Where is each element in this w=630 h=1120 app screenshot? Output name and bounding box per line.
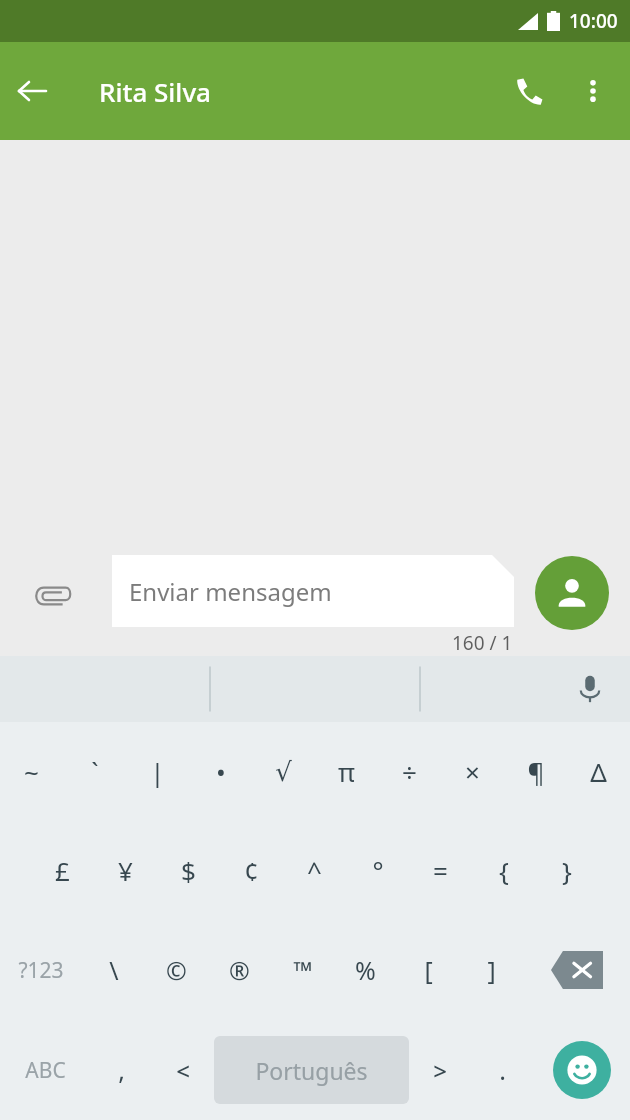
button[interactable]: Emoji xyxy=(553,1041,611,1099)
button[interactable]: < xyxy=(152,1020,214,1120)
button[interactable]: ¢ xyxy=(220,821,283,920)
button[interactable]: • xyxy=(189,722,252,821)
staticText: © xyxy=(166,953,187,987)
button[interactable]: $ xyxy=(157,821,220,920)
staticText: > xyxy=(433,1054,447,1087)
button[interactable]: © xyxy=(145,920,208,1020)
button[interactable]: ^ xyxy=(283,821,346,920)
button[interactable]: £ xyxy=(31,821,94,920)
button[interactable]: Português xyxy=(214,1036,409,1104)
button[interactable]: Attach xyxy=(22,570,82,622)
staticText: Português xyxy=(255,1055,368,1086)
button[interactable]: ?123 xyxy=(0,920,82,1020)
button[interactable]: | xyxy=(126,722,189,821)
button[interactable]: ™ xyxy=(271,920,334,1020)
button[interactable]: = xyxy=(409,821,472,920)
staticText: ÷ xyxy=(402,754,417,789)
staticText: \ xyxy=(109,953,119,987)
staticText: ¶ xyxy=(527,754,545,789)
staticText: ¥ xyxy=(118,853,133,888)
staticText: Enviar mensagem xyxy=(129,575,332,608)
staticText: ABC xyxy=(25,1056,66,1085)
button[interactable]: Enviar mensagem xyxy=(112,555,514,627)
staticText: ~ xyxy=(24,754,39,789)
button[interactable]: ~ xyxy=(0,722,63,821)
button[interactable]: % xyxy=(334,920,397,1020)
staticText: { xyxy=(499,853,509,888)
button[interactable]: Δ xyxy=(567,722,630,821)
button[interactable]: \ xyxy=(82,920,145,1020)
staticText: Rita Silva xyxy=(99,74,211,109)
staticText: [ xyxy=(424,953,433,987)
button[interactable]: [ xyxy=(397,920,460,1020)
button[interactable]: } xyxy=(535,821,598,920)
staticText: ¢ xyxy=(244,853,259,888)
button[interactable]: ® xyxy=(208,920,271,1020)
staticText: × xyxy=(465,754,480,789)
button[interactable]: , xyxy=(90,1020,152,1120)
staticText: 10:00 xyxy=(569,8,618,34)
staticText: < xyxy=(176,1054,190,1087)
button[interactable]: . xyxy=(471,1020,533,1120)
staticText: • xyxy=(216,754,226,789)
button[interactable]: ¥ xyxy=(94,821,157,920)
button[interactable]: ABC xyxy=(0,1020,90,1120)
staticText: ° xyxy=(372,853,384,888)
staticText: ^ xyxy=(307,853,322,888)
staticText: ?123 xyxy=(18,956,64,985)
staticText: ™ xyxy=(293,953,313,987)
button[interactable]: π xyxy=(315,722,378,821)
button[interactable]: Call xyxy=(496,58,562,124)
staticText: 160 / 1 xyxy=(452,630,513,656)
button[interactable]: > xyxy=(409,1020,471,1120)
button[interactable]: ` xyxy=(63,722,126,821)
staticText: $ xyxy=(181,853,196,888)
staticText: ® xyxy=(229,953,250,987)
button[interactable]: Backspace xyxy=(523,920,630,1020)
button[interactable]: Voice input xyxy=(564,663,616,715)
staticText: } xyxy=(562,853,572,888)
button[interactable]: ÷ xyxy=(378,722,441,821)
staticText: = xyxy=(433,853,448,888)
staticText: ` xyxy=(91,754,99,789)
button[interactable]: ° xyxy=(346,821,409,920)
staticText: £ xyxy=(55,853,70,888)
staticText: ] xyxy=(487,953,496,987)
staticText: . xyxy=(499,1053,506,1087)
button[interactable]: More options xyxy=(562,60,624,122)
staticText: √ xyxy=(275,757,292,787)
button[interactable]: ¶ xyxy=(504,722,567,821)
button[interactable]: √ xyxy=(252,722,315,821)
button[interactable]: Back xyxy=(0,59,64,123)
staticText: , xyxy=(118,1053,125,1087)
button[interactable]: ] xyxy=(460,920,523,1020)
button[interactable]: { xyxy=(472,821,535,920)
staticText: Δ xyxy=(590,754,607,789)
button[interactable]: Send xyxy=(535,556,609,630)
staticText: % xyxy=(355,953,376,987)
button[interactable]: × xyxy=(441,722,504,821)
staticText: | xyxy=(150,754,165,789)
staticText: π xyxy=(338,754,355,789)
